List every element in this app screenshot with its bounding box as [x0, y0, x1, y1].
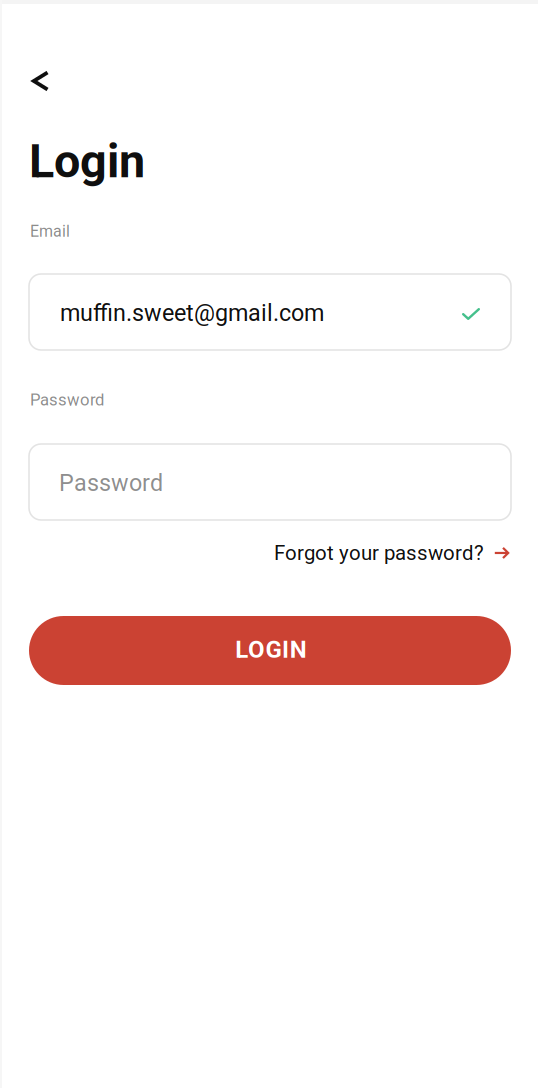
staticText: Login [29, 134, 145, 189]
staticText: Password [30, 390, 104, 409]
button[interactable]: LOGIN [29, 616, 511, 685]
button[interactable]: Forgot your password? [274, 541, 509, 565]
staticText: LOGIN [235, 635, 307, 663]
button[interactable]: Back [29, 58, 77, 104]
staticText: muffin.sweet@gmail.com [60, 299, 324, 327]
staticText: Email [30, 222, 70, 241]
staticText: Password [59, 469, 163, 497]
staticText: Forgot your password? [274, 541, 484, 565]
